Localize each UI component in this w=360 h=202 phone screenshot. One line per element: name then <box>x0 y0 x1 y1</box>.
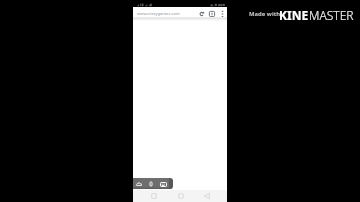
button[interactable]: www.crazygames.com <box>133 10 197 17</box>
button[interactable]: More options <box>217 10 227 17</box>
button[interactable]: Recent apps <box>148 190 159 201</box>
staticText: KINE <box>279 7 309 23</box>
staticText: www.crazygames.com <box>137 11 180 17</box>
button[interactable]: Home <box>175 190 186 201</box>
button[interactable]: Keyboard <box>160 181 167 187</box>
staticText: MASTER <box>309 7 354 23</box>
button[interactable]: Back <box>201 190 212 201</box>
button[interactable]: Thumbs up <box>136 181 142 187</box>
button[interactable]: Open tabs: 1 <box>207 10 217 17</box>
button[interactable]: Thumbs up <box>133 178 173 189</box>
button[interactable]: Attachment <box>148 181 154 187</box>
staticText: Made with <box>249 10 281 18</box>
button[interactable]: Reload page <box>197 10 207 17</box>
